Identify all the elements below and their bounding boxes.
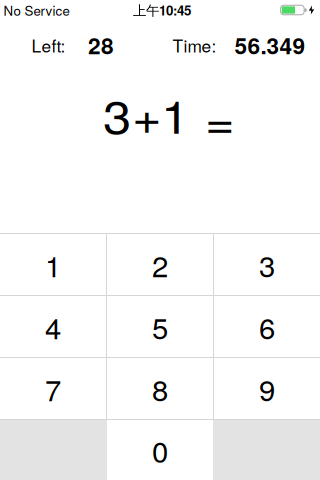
staticText: Left: xyxy=(32,33,66,57)
staticText: 4 xyxy=(45,306,61,347)
staticText: 5 xyxy=(152,306,168,347)
button[interactable]: 0 xyxy=(107,420,213,480)
staticText: 3 xyxy=(259,244,275,285)
staticText: + xyxy=(133,83,159,146)
staticText: 56.349 xyxy=(234,29,305,61)
staticText: 7 xyxy=(45,368,61,409)
staticText: 2 xyxy=(152,244,168,285)
staticText: Time: xyxy=(172,33,216,57)
staticText: 9 xyxy=(259,368,275,409)
staticText: 3 xyxy=(104,83,129,146)
button[interactable]: 5 xyxy=(107,296,213,357)
staticText: 0 xyxy=(152,429,168,470)
staticText: = xyxy=(206,88,232,151)
button[interactable]: 1 xyxy=(0,234,106,295)
staticText: 1 xyxy=(45,244,61,285)
button[interactable]: 9 xyxy=(214,358,320,419)
staticText: No Service xyxy=(3,1,69,19)
button[interactable]: 4 xyxy=(0,296,106,357)
staticText: 28 xyxy=(88,29,114,61)
staticText: 1 xyxy=(163,83,188,146)
button[interactable]: 2 xyxy=(107,234,213,295)
staticText: 上午10:45 xyxy=(133,1,191,19)
button[interactable]: 3 xyxy=(214,234,320,295)
staticText: 8 xyxy=(152,368,168,409)
button[interactable]: 7 xyxy=(0,358,106,419)
staticText: 6 xyxy=(259,306,275,347)
button[interactable]: 6 xyxy=(214,296,320,357)
button[interactable]: 8 xyxy=(107,358,213,419)
